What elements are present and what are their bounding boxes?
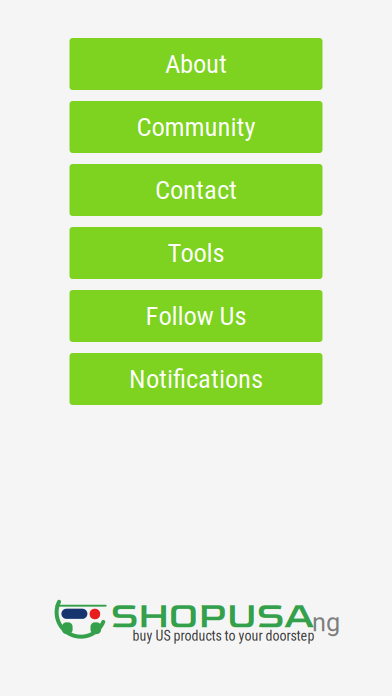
staticText: Community — [136, 111, 255, 143]
staticText: buy US products to your doorstep — [132, 628, 314, 644]
staticText: About — [165, 48, 227, 80]
staticText: SHOPUSA — [110, 594, 313, 638]
button[interactable]: Follow Us — [69, 290, 322, 342]
button[interactable]: About — [69, 38, 322, 90]
staticText: ng — [312, 608, 340, 637]
staticText: Follow Us — [145, 300, 246, 332]
staticText: Contact — [155, 174, 237, 206]
button[interactable]: Tools — [69, 227, 322, 279]
staticText: Tools — [167, 237, 224, 269]
button[interactable]: Notifications — [69, 353, 322, 405]
button[interactable]: Community — [69, 101, 322, 153]
staticText: Notifications — [129, 363, 263, 395]
button[interactable]: Contact — [69, 164, 322, 216]
